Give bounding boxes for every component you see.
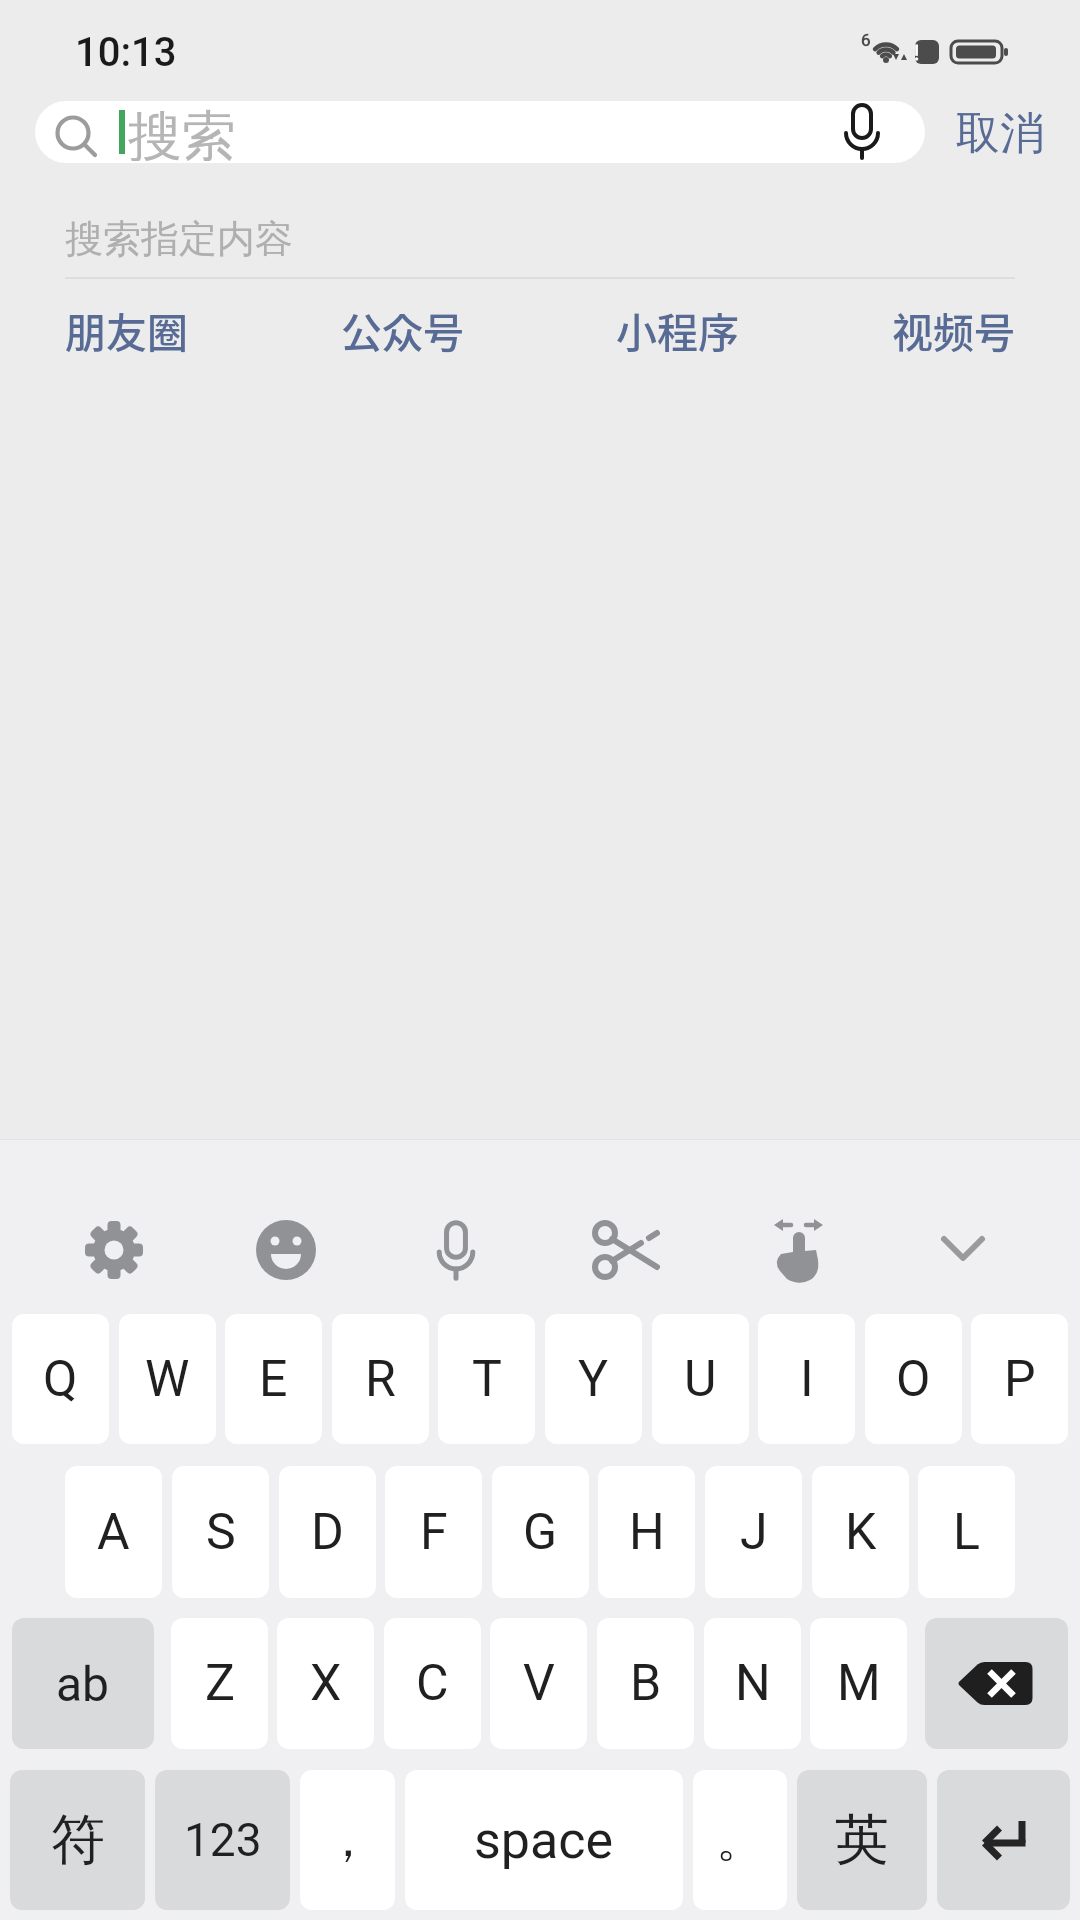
staticText: W [145, 1350, 190, 1409]
staticText: T [472, 1350, 502, 1409]
button[interactable] [206, 1200, 372, 1300]
button[interactable] [704, 1200, 870, 1300]
staticText: U [684, 1350, 717, 1409]
staticText: D [311, 1503, 344, 1562]
staticText: L [953, 1503, 980, 1562]
staticText: C [416, 1654, 449, 1713]
staticText: J [740, 1503, 768, 1562]
staticText: ab [56, 1656, 110, 1712]
button[interactable]: C [384, 1618, 481, 1749]
button[interactable]: U [652, 1314, 749, 1444]
staticText: I [800, 1350, 814, 1409]
button[interactable] [937, 1770, 1070, 1910]
staticText: P [1004, 1350, 1036, 1409]
button[interactable]: Y [545, 1314, 642, 1444]
button[interactable] [925, 1618, 1068, 1749]
button[interactable]: T [438, 1314, 535, 1444]
staticText: V [523, 1654, 555, 1713]
staticText: 小程序 [616, 300, 739, 356]
button[interactable]: 符 [10, 1770, 145, 1910]
button[interactable]: P [971, 1314, 1068, 1444]
button[interactable]: 小程序 [616, 300, 739, 356]
button[interactable] [538, 1200, 704, 1300]
staticText: B [630, 1654, 662, 1713]
staticText: ! [914, 41, 920, 64]
staticText: M [837, 1654, 881, 1713]
staticText: Y [578, 1350, 609, 1409]
staticText: H [629, 1503, 665, 1562]
button[interactable]: 搜索 [35, 101, 925, 163]
staticText: R [365, 1350, 396, 1409]
staticText: S [206, 1503, 236, 1562]
button[interactable]: V [490, 1618, 587, 1749]
button[interactable]: 英 [797, 1770, 927, 1910]
button[interactable]: A [65, 1466, 162, 1598]
staticText: 搜索 [128, 103, 236, 161]
button[interactable] [870, 1200, 1036, 1300]
button[interactable]: ， [300, 1770, 395, 1910]
staticText: 123 [184, 1813, 262, 1867]
button[interactable]: I [758, 1314, 855, 1444]
staticText: 取消 [956, 106, 1044, 161]
staticText: 符 [51, 1806, 105, 1874]
staticText: 英 [835, 1806, 889, 1874]
staticText: 公众号 [341, 300, 464, 356]
staticText: 朋友圈 [65, 300, 188, 356]
staticText: G [523, 1503, 558, 1562]
button[interactable]: K [812, 1466, 909, 1598]
button[interactable]: L [918, 1466, 1015, 1598]
button[interactable]: 取消 [925, 103, 1075, 163]
button[interactable]: E [225, 1314, 322, 1444]
button[interactable] [40, 1200, 206, 1300]
button[interactable]: O [865, 1314, 962, 1444]
staticText: space [474, 1810, 614, 1871]
button[interactable]: J [705, 1466, 802, 1598]
button[interactable]: B [597, 1618, 694, 1749]
button[interactable]: D [279, 1466, 376, 1598]
button[interactable]: F [385, 1466, 482, 1598]
staticText: Q [43, 1350, 78, 1409]
button[interactable]: 朋友圈 [65, 300, 188, 356]
button[interactable]: Z [171, 1618, 268, 1749]
button[interactable]: 123 [155, 1770, 290, 1910]
button[interactable] [372, 1200, 538, 1300]
staticText: Z [205, 1654, 235, 1713]
button[interactable]: ab [12, 1618, 154, 1749]
staticText: F [420, 1503, 448, 1562]
button[interactable]: H [598, 1466, 695, 1598]
staticText: A [97, 1503, 130, 1562]
button[interactable]: R [332, 1314, 429, 1444]
staticText: E [259, 1350, 288, 1409]
button[interactable]: 。 [693, 1770, 787, 1910]
staticText: N [735, 1654, 771, 1713]
staticText: 视频号 [892, 300, 1015, 356]
button[interactable]: space [405, 1770, 683, 1910]
staticText: K [845, 1503, 877, 1562]
button[interactable]: N [704, 1618, 801, 1749]
staticText: 。 [716, 1810, 764, 1870]
button[interactable]: 公众号 [341, 300, 464, 356]
staticText: 10:13 [75, 29, 177, 76]
button[interactable]: X [277, 1618, 374, 1749]
staticText: 搜索指定内容 [65, 215, 293, 263]
staticText: 6 [861, 30, 871, 50]
staticText: O [896, 1350, 931, 1409]
button[interactable]: S [172, 1466, 269, 1598]
button[interactable]: G [492, 1466, 589, 1598]
button[interactable]: W [119, 1314, 216, 1444]
button[interactable]: M [810, 1618, 907, 1749]
staticText: ， [324, 1810, 372, 1870]
button[interactable]: 视频号 [892, 300, 1015, 356]
button[interactable]: Q [12, 1314, 109, 1444]
staticText: X [310, 1654, 342, 1713]
